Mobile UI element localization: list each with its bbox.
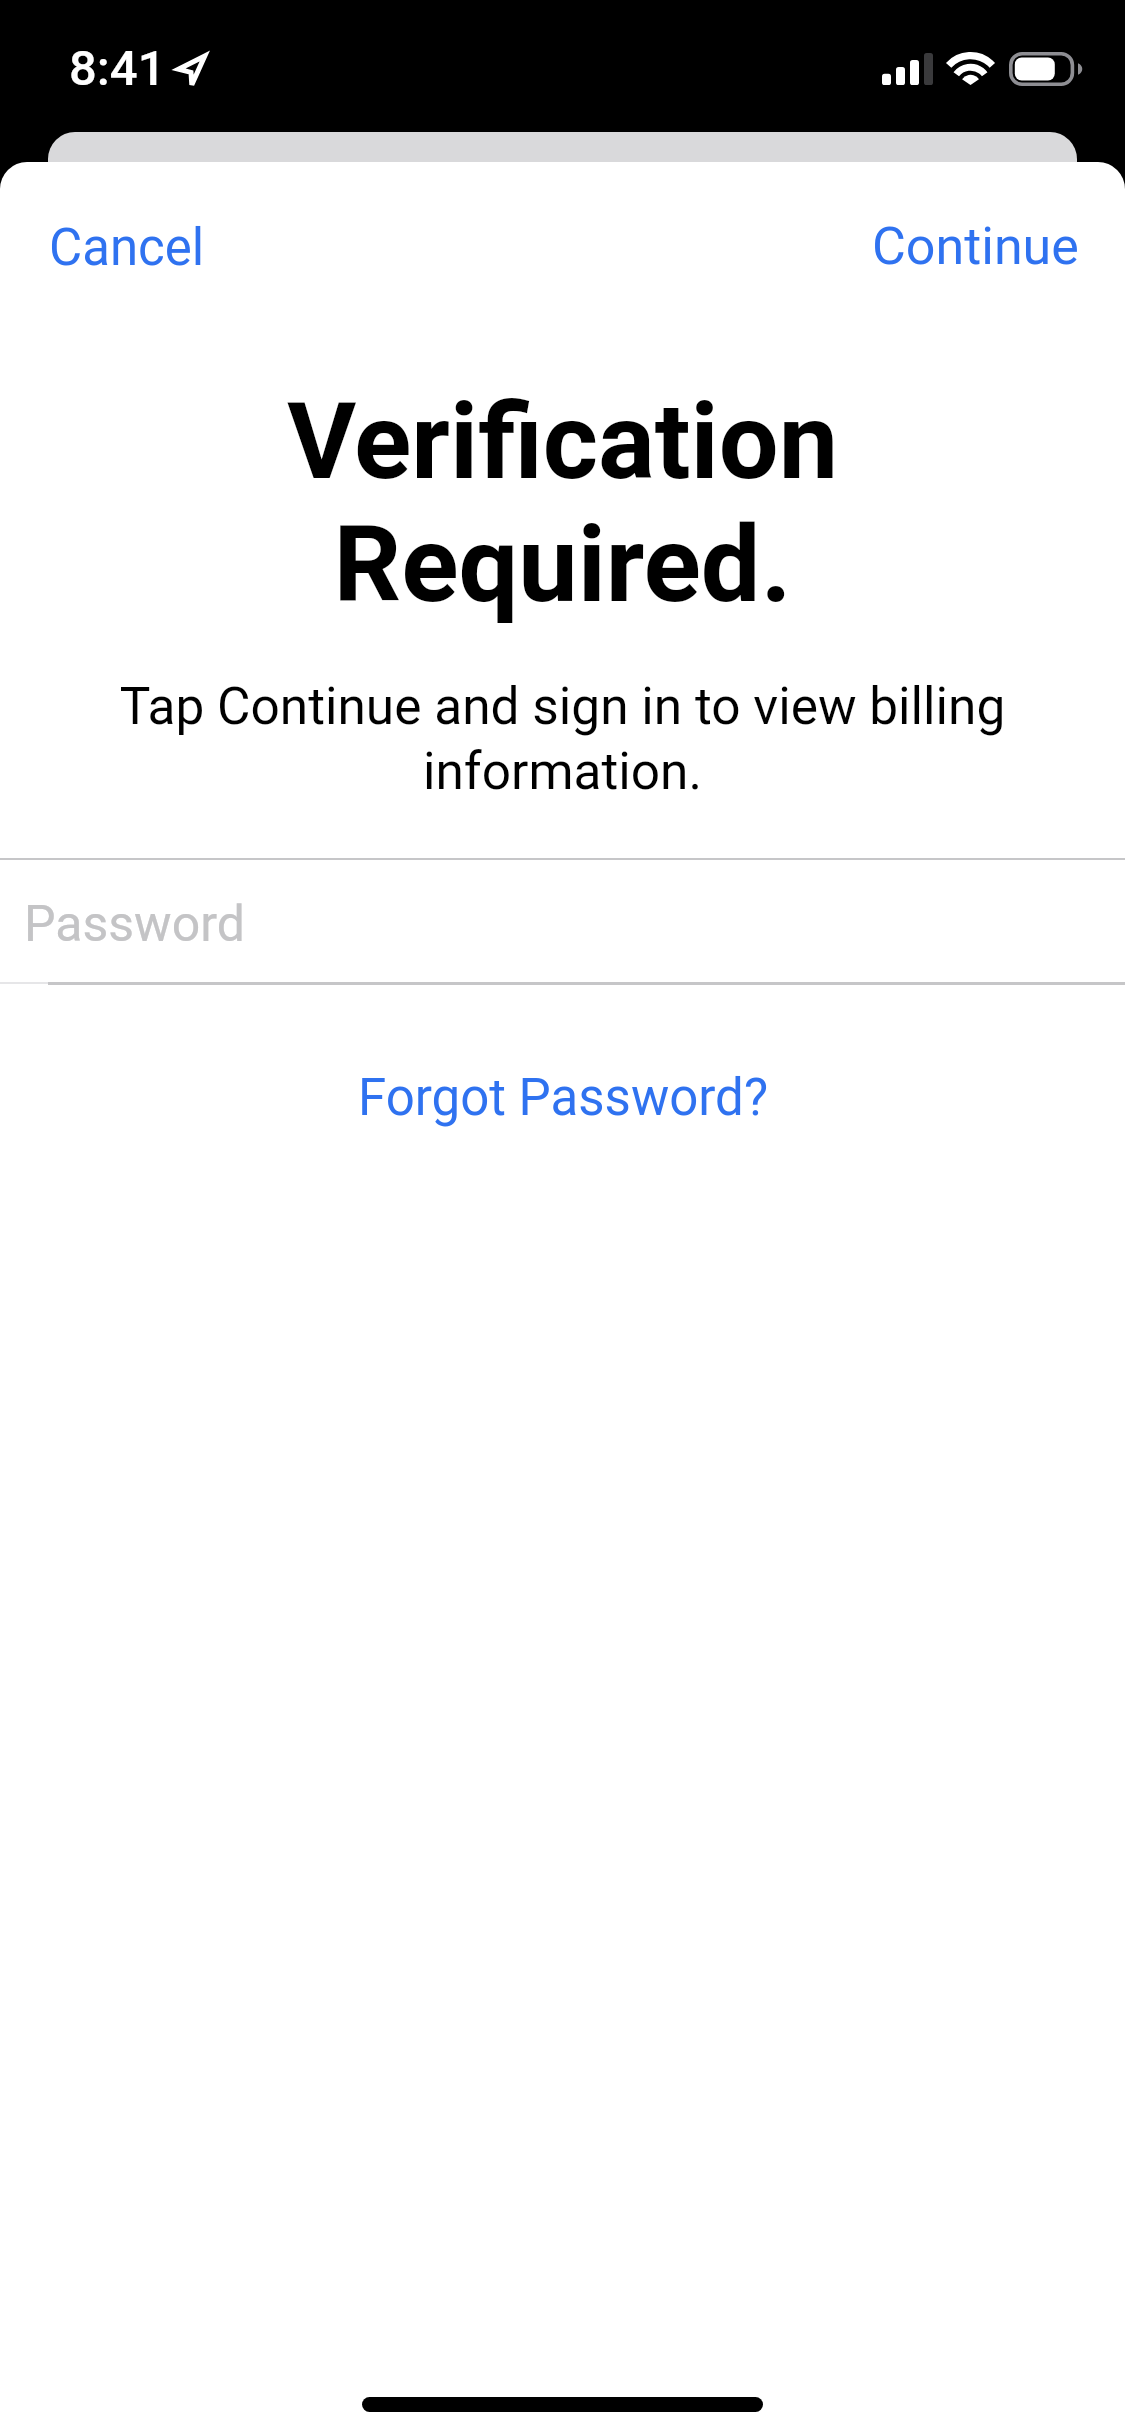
other: Cellular signal [882,53,933,85]
button[interactable]: Password [0,863,1125,985]
button[interactable]: Continue [842,194,1109,299]
other: Wi-Fi [947,51,994,86]
button[interactable]: Cancel [19,196,235,300]
staticText: Continue [872,216,1079,277]
other: Battery [1009,52,1082,86]
staticText: Cancel [49,218,205,278]
staticText: Forgot Password? [358,1068,768,1128]
staticText: Password [24,895,245,954]
staticText: Verification Required. [120,380,1005,627]
staticText: Tap Continue and sign in to view billing… [58,676,1067,802]
staticText: 8:41 [69,40,166,97]
other: Location active [170,50,210,90]
button[interactable]: Forgot Password? [318,1044,808,1152]
